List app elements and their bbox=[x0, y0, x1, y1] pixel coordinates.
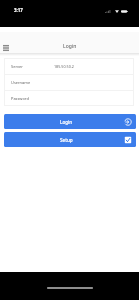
button[interactable]: Login bbox=[4, 114, 136, 129]
staticText: Setup bbox=[60, 137, 73, 143]
button[interactable]: Username bbox=[4, 74, 134, 90]
button[interactable]: Setup bbox=[4, 132, 136, 147]
staticText: Password bbox=[11, 96, 54, 101]
button[interactable]: Server bbox=[4, 58, 134, 74]
staticText: Login bbox=[60, 119, 73, 125]
button[interactable]: Menu bbox=[0, 42, 12, 53]
staticText: Username bbox=[11, 80, 54, 85]
staticText: Server bbox=[11, 64, 54, 69]
button[interactable]: Password bbox=[4, 90, 134, 106]
staticText: 185.50.50.2 bbox=[54, 64, 74, 69]
staticText: Login bbox=[63, 43, 77, 50]
staticText: 3:17 bbox=[14, 7, 23, 13]
